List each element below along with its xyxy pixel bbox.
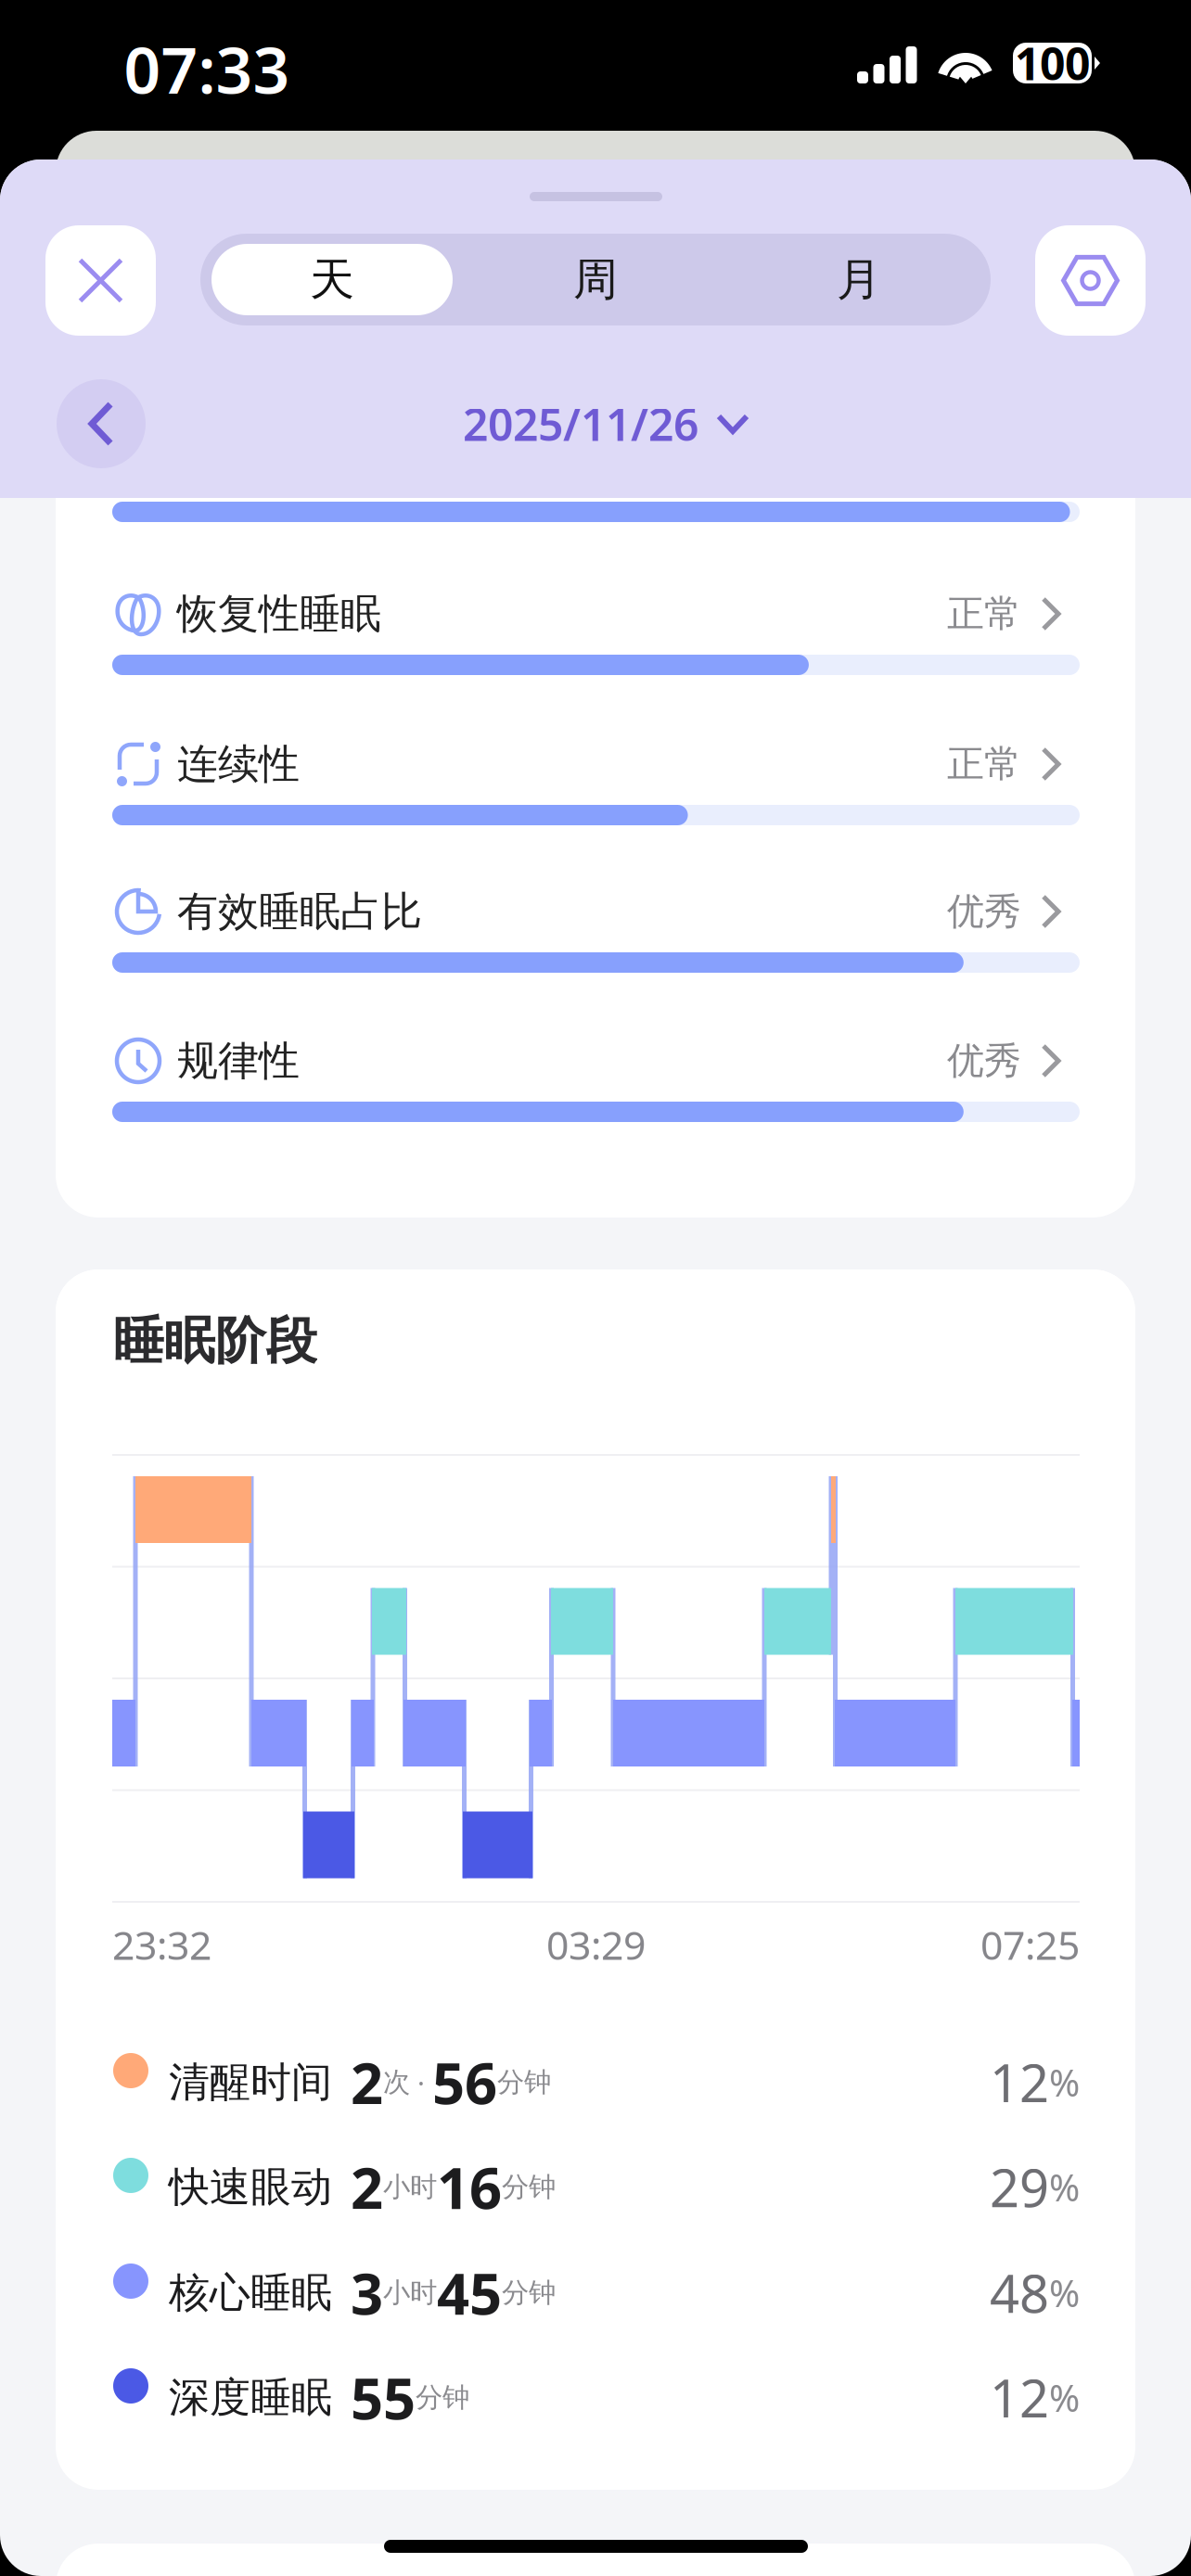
- button[interactable]: 天: [200, 234, 464, 325]
- staticText: 12: [990, 2048, 1049, 2117]
- staticText: 有效睡眠占比: [177, 886, 422, 937]
- staticText: 小时: [383, 2170, 437, 2204]
- button[interactable]: 月: [727, 234, 991, 325]
- button[interactable]: 连续性: [56, 719, 1135, 869]
- staticText: 48: [990, 2258, 1049, 2327]
- staticText: 100: [1015, 33, 1090, 93]
- button[interactable]: 有效睡眠占比: [56, 866, 1135, 1016]
- staticText: 正常: [947, 741, 1021, 787]
- staticText: 天: [310, 252, 354, 307]
- staticText: 3: [351, 2255, 383, 2330]
- staticText: 16: [437, 2149, 502, 2225]
- staticText: 2: [351, 2149, 383, 2225]
- staticText: 55: [351, 2360, 416, 2435]
- button[interactable]: 周: [464, 234, 727, 325]
- staticText: 小时: [383, 2276, 437, 2309]
- staticText: %: [1049, 2268, 1080, 2317]
- staticText: 23:32: [112, 1918, 211, 1971]
- staticText: 周: [573, 252, 618, 307]
- staticText: 快速眼动: [169, 2162, 332, 2212]
- staticText: 连续性: [177, 739, 300, 789]
- staticText: 核心睡眠: [169, 2268, 332, 2318]
- button[interactable]: Settings: [1035, 225, 1146, 336]
- button[interactable]: 规律性: [56, 1015, 1135, 1166]
- staticText: 分钟: [502, 2276, 556, 2309]
- staticText: 07:33: [124, 26, 290, 111]
- staticText: 正常: [947, 591, 1021, 637]
- staticText: 分钟: [497, 2066, 551, 2099]
- staticText: 07:25: [980, 1918, 1080, 1971]
- staticText: 12: [990, 2363, 1049, 2432]
- staticText: 月: [837, 252, 881, 307]
- staticText: 2: [351, 2044, 383, 2120]
- staticText: 睡眠阶段: [113, 1310, 317, 1372]
- button[interactable]: 2025/11/26: [327, 379, 883, 468]
- staticText: 29: [990, 2153, 1049, 2221]
- staticText: 次: [383, 2066, 410, 2099]
- staticText: 优秀: [947, 1038, 1021, 1084]
- button[interactable]: Close: [45, 225, 156, 336]
- staticText: %: [1049, 2162, 1080, 2212]
- button[interactable]: 恢复性睡眠: [56, 568, 1135, 719]
- staticText: 2025/11/26: [463, 394, 698, 453]
- staticText: 清醒时间: [169, 2057, 332, 2107]
- staticText: 56: [432, 2044, 497, 2120]
- staticText: ·: [410, 2064, 432, 2100]
- staticText: 45: [437, 2255, 502, 2330]
- staticText: 恢复性睡眠: [177, 589, 381, 639]
- staticText: 分钟: [416, 2381, 469, 2414]
- staticText: 03:29: [546, 1918, 646, 1971]
- staticText: 规律性: [177, 1036, 300, 1086]
- button[interactable]: Previous day: [57, 379, 146, 468]
- staticText: 分钟: [502, 2170, 556, 2204]
- staticText: %: [1049, 2058, 1080, 2107]
- staticText: %: [1049, 2373, 1080, 2422]
- staticText: 优秀: [947, 889, 1021, 934]
- staticText: 深度睡眠: [169, 2372, 332, 2423]
